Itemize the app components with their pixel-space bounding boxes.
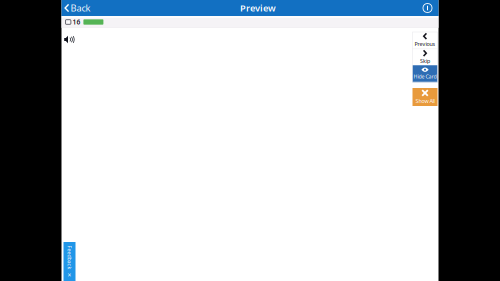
button[interactable]: Play audio [62, 34, 76, 45]
staticText: Show All [415, 97, 434, 105]
staticText: 16 [72, 18, 80, 26]
button[interactable]: Information [419, 0, 438, 16]
staticText: Feedback [57, 254, 81, 261]
button[interactable]: Back [61, 0, 96, 16]
staticText: Hide Card [413, 73, 436, 80]
button[interactable]: Skip [412, 49, 437, 65]
button[interactable]: Feedback [63, 242, 75, 281]
staticText: Preview [240, 2, 276, 14]
staticText: × [67, 271, 71, 279]
staticText: Back [70, 2, 90, 14]
button[interactable]: Hide Card [412, 65, 437, 82]
button[interactable]: Show All [412, 88, 437, 106]
staticText: Skip [420, 57, 430, 65]
staticText: Previous [414, 40, 435, 48]
button[interactable]: Previous [412, 32, 437, 49]
